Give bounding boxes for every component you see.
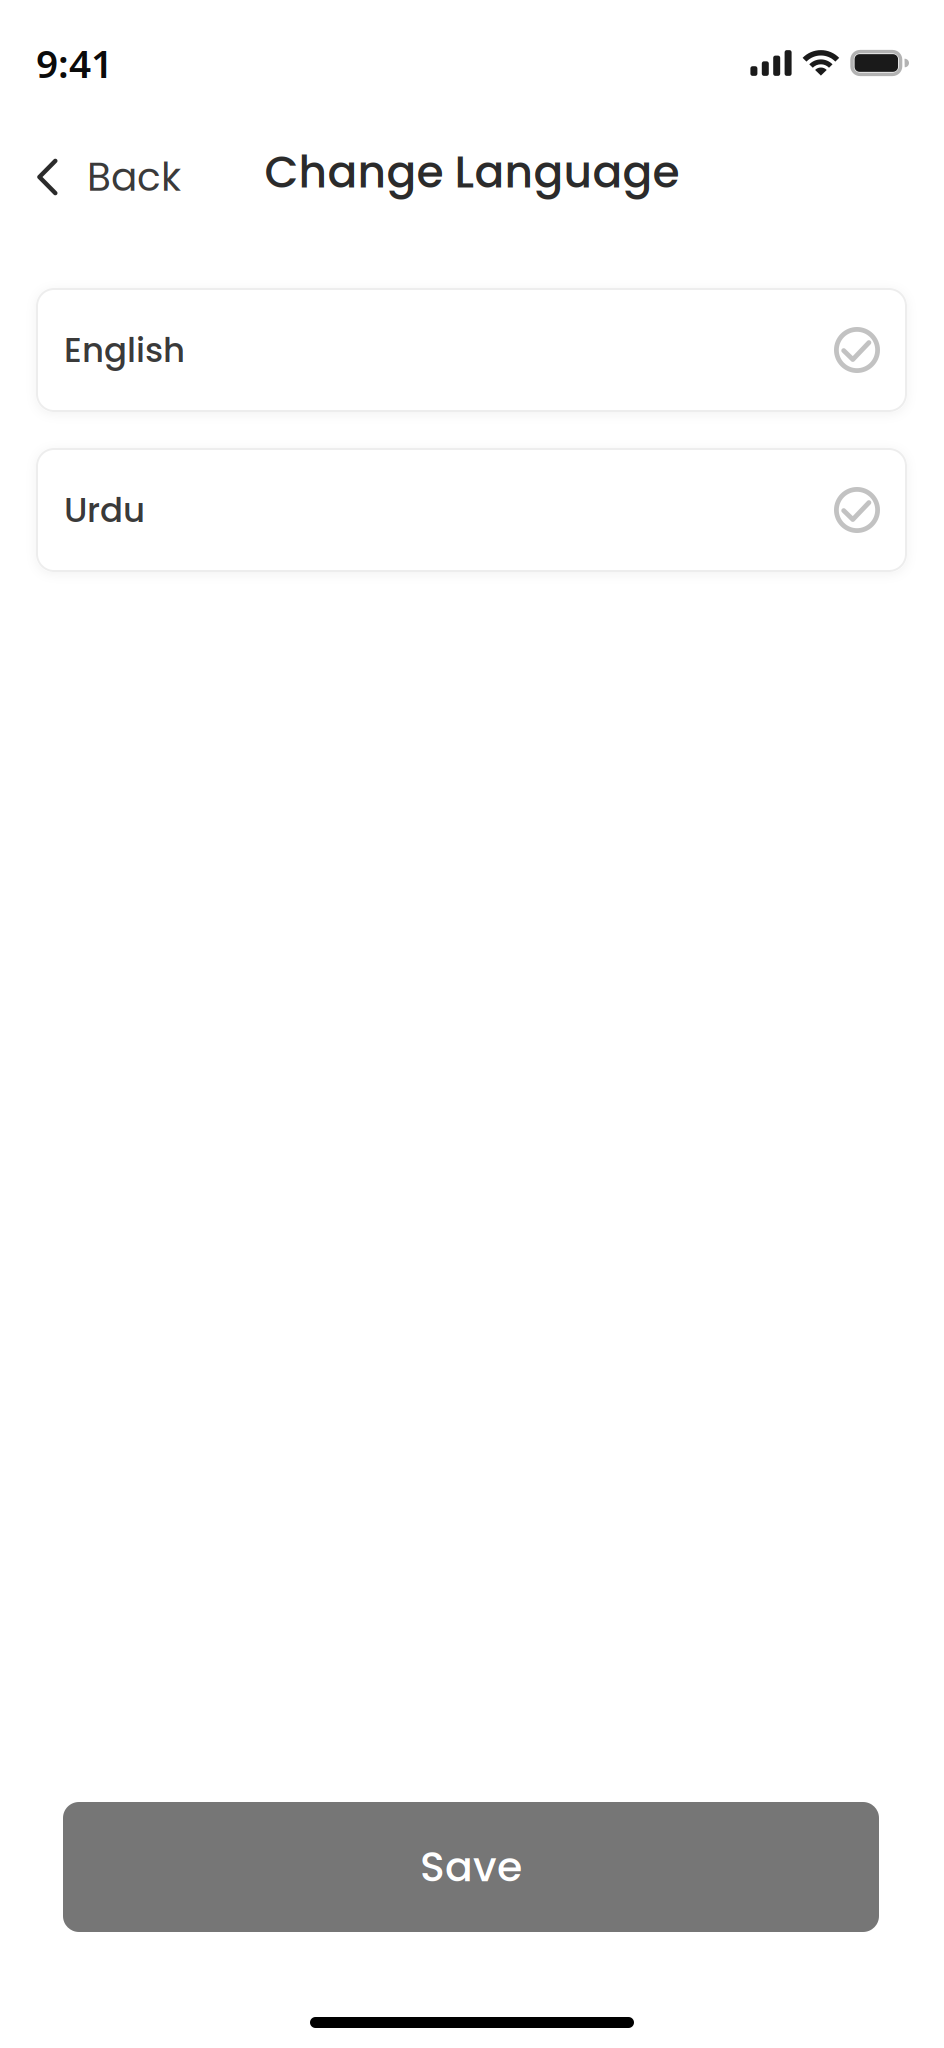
staticText: 9:41 [36, 37, 113, 89]
staticText: Back [87, 150, 181, 204]
staticText: Change Language [264, 141, 679, 203]
staticText: Save [420, 1838, 522, 1896]
button[interactable]: Back [0, 140, 199, 214]
staticText: Urdu [64, 486, 145, 534]
staticText: English [64, 326, 185, 374]
button[interactable]: Urdu [36, 448, 907, 572]
button[interactable]: English [36, 288, 907, 412]
button[interactable]: Save [63, 1802, 879, 1932]
